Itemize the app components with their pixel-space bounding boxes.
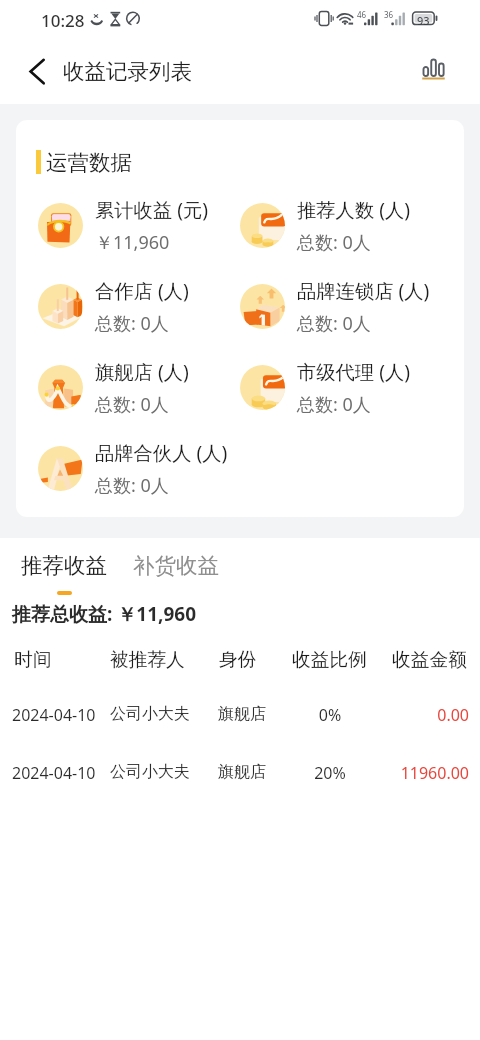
- button[interactable]: 推荐人数 (人): [240, 195, 450, 255]
- staticText: 推荐总收益: ￥11,960: [12, 601, 197, 627]
- staticText: 总数: 0人: [297, 311, 371, 336]
- staticText: 品牌合伙人 (人): [95, 439, 228, 465]
- staticText: 推荐收益: [21, 552, 107, 579]
- staticText: 公司小大夫: [110, 704, 190, 724]
- staticText: 补货收益: [133, 552, 219, 579]
- staticText: 时间: [14, 648, 52, 672]
- staticText: 市级代理 (人): [297, 358, 411, 384]
- button[interactable]: 市级代理 (人): [240, 357, 450, 417]
- button[interactable]: 2024-04-10: [0, 749, 480, 807]
- button[interactable]: 品牌连锁店 (人): [240, 276, 450, 336]
- button[interactable]: 返回: [16, 50, 58, 92]
- button[interactable]: 2024-04-10: [0, 691, 480, 749]
- button[interactable]: 品牌合伙人 (人): [38, 438, 248, 498]
- staticText: 累计收益 (元): [95, 196, 209, 222]
- staticText: 11960.00: [368, 762, 469, 784]
- staticText: 46: [357, 9, 367, 20]
- button[interactable]: 推荐收益: [8, 538, 120, 595]
- staticText: 36: [384, 9, 394, 20]
- staticText: 身份: [219, 648, 257, 672]
- staticText: 0%: [290, 704, 370, 726]
- staticText: 总数: 0人: [95, 473, 169, 498]
- staticText: 收益记录列表: [63, 58, 192, 85]
- staticText: 0.00: [368, 704, 469, 726]
- staticText: 运营数据: [46, 149, 132, 176]
- staticText: 旗舰店: [218, 762, 266, 782]
- staticText: 93: [417, 13, 430, 28]
- staticText: 总数: 0人: [95, 311, 169, 336]
- button[interactable]: 合作店 (人): [38, 276, 248, 336]
- button[interactable]: 旗舰店 (人): [38, 357, 248, 417]
- staticText: 20%: [290, 762, 370, 784]
- staticText: 总数: 0人: [297, 230, 371, 255]
- button[interactable]: 累计收益 (元): [38, 195, 248, 255]
- staticText: 被推荐人: [110, 648, 185, 672]
- button[interactable]: 统计图表: [411, 46, 455, 90]
- staticText: 2024-04-10: [12, 762, 96, 784]
- staticText: 公司小大夫: [110, 762, 190, 782]
- staticText: 推荐人数 (人): [297, 196, 411, 222]
- staticText: 旗舰店: [218, 704, 266, 724]
- staticText: 品牌连锁店 (人): [297, 277, 430, 303]
- button[interactable]: 补货收益: [123, 538, 229, 586]
- staticText: 10:28: [41, 9, 85, 32]
- staticText: 2024-04-10: [12, 704, 96, 726]
- staticText: 总数: 0人: [95, 392, 169, 417]
- staticText: 旗舰店 (人): [95, 358, 189, 384]
- staticText: 总数: 0人: [297, 392, 371, 417]
- staticText: 合作店 (人): [95, 277, 189, 303]
- staticText: 收益比例: [292, 648, 367, 672]
- staticText: ￥11,960: [95, 230, 170, 255]
- staticText: 收益金额: [392, 648, 467, 672]
